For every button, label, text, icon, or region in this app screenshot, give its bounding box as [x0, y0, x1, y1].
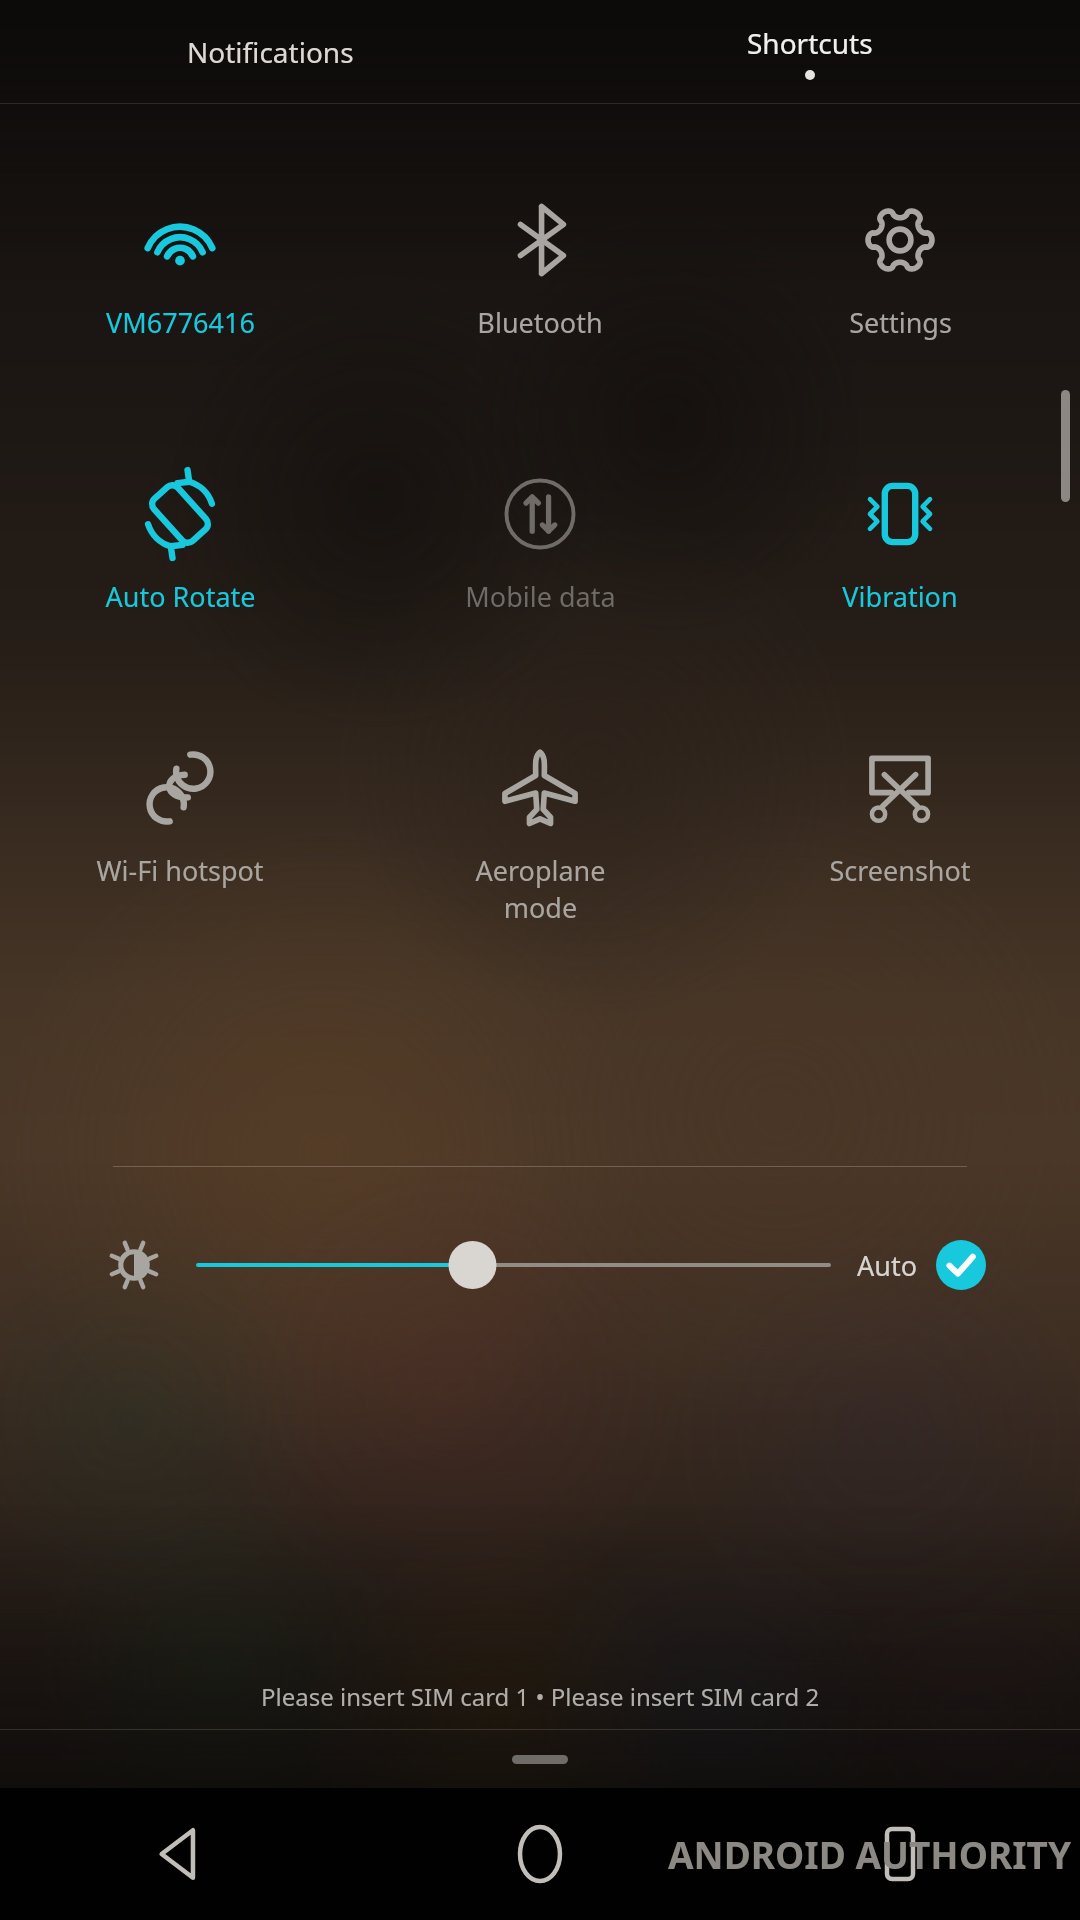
- button[interactable]: Home: [485, 1799, 595, 1909]
- button[interactable]: Screenshot: [720, 736, 1080, 889]
- button[interactable]: Aeroplane mode: [360, 736, 720, 926]
- button[interactable]: Shortcuts: [540, 0, 1080, 104]
- staticText: Settings: [849, 304, 952, 341]
- staticText: Notifications: [187, 33, 354, 71]
- button[interactable]: [198, 1217, 829, 1313]
- button[interactable]: Recent apps: [845, 1799, 955, 1909]
- button[interactable]: Notifications: [0, 0, 540, 104]
- staticText: Wi-Fi hotspot: [96, 852, 264, 889]
- button[interactable]: Wi-Fi hotspot: [0, 736, 360, 889]
- button[interactable]: Mobile data: [360, 462, 720, 615]
- button[interactable]: Auto Rotate: [0, 462, 360, 615]
- button[interactable]: [512, 1755, 568, 1764]
- staticText: Mobile data: [465, 578, 616, 615]
- staticText: Bluetooth: [477, 304, 603, 341]
- staticText: Screenshot: [829, 852, 971, 889]
- staticText: Auto Rotate: [105, 578, 256, 615]
- button[interactable]: Auto: [857, 1240, 986, 1290]
- staticText: VM6776416: [106, 304, 255, 341]
- button[interactable]: Vibration: [720, 462, 1080, 615]
- button[interactable]: Back: [125, 1799, 235, 1909]
- staticText: Please insert SIM card 1 • Please insert…: [261, 1680, 820, 1713]
- button[interactable]: Bluetooth: [360, 188, 720, 341]
- staticText: Aeroplane mode: [475, 852, 606, 926]
- staticText: Vibration: [842, 578, 958, 615]
- staticText: ANDROID AUTHORITY: [668, 1829, 1072, 1879]
- staticText: Auto: [857, 1247, 918, 1284]
- staticText: Shortcuts: [747, 24, 873, 62]
- button[interactable]: Brightness: [94, 1225, 174, 1305]
- button[interactable]: VM6776416: [0, 188, 360, 341]
- button[interactable]: Settings: [720, 188, 1080, 341]
